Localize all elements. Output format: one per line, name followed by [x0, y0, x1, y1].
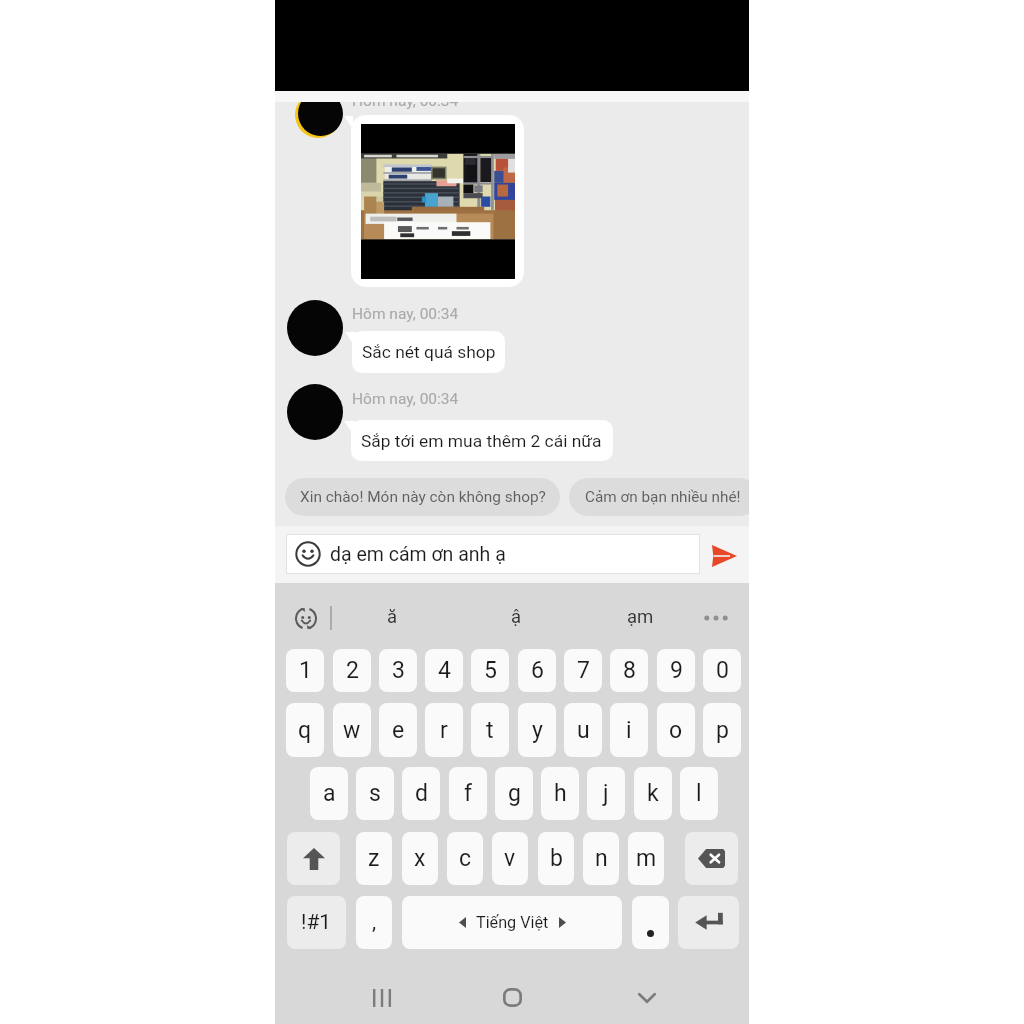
staticText: g	[508, 780, 521, 807]
button[interactable]: k	[634, 767, 672, 820]
button[interactable]: 9	[657, 649, 695, 692]
button[interactable]: Sắc nét quá shop	[352, 331, 505, 373]
button[interactable]: Recent apps	[367, 984, 395, 1012]
staticText: Sắc nét quá shop	[362, 342, 496, 362]
staticText: 4	[438, 657, 451, 684]
button[interactable]: f	[449, 767, 487, 820]
staticText: y	[532, 717, 543, 744]
staticText: v	[504, 845, 516, 872]
staticText: u	[577, 717, 590, 744]
button[interactable]: Backspace	[685, 832, 738, 885]
staticText: ă	[387, 606, 398, 628]
staticText: ,	[372, 910, 377, 935]
staticText: 1	[299, 657, 312, 684]
button[interactable]: d	[402, 767, 440, 820]
button[interactable]: y	[518, 703, 556, 757]
button[interactable]: l	[680, 767, 718, 820]
button[interactable]: Enter	[678, 896, 739, 949]
button[interactable]: u	[564, 703, 602, 757]
button[interactable]: i	[610, 703, 648, 757]
button[interactable]: Photo message	[351, 115, 524, 287]
button[interactable]: 2	[333, 649, 371, 692]
staticText: p	[716, 717, 729, 744]
staticText: Sắp tới em mua thêm 2 cái nữa	[361, 431, 602, 451]
button[interactable]: Cảm ơn bạn nhiều nhé!	[569, 478, 749, 516]
button[interactable]: 7	[564, 649, 602, 692]
staticText: Xin chào! Món này còn không shop?	[300, 488, 546, 506]
button[interactable]: e	[379, 703, 417, 757]
staticText: s	[369, 780, 381, 807]
button[interactable]: p	[703, 703, 741, 757]
staticText: h	[554, 780, 567, 807]
button[interactable]: Profile picture	[287, 300, 343, 356]
staticText: 5	[484, 657, 497, 684]
button[interactable]: x	[402, 832, 438, 885]
staticText: Cảm ơn bạn nhiều nhé!	[585, 488, 741, 506]
button[interactable]: Hide keyboard	[633, 984, 661, 1012]
button[interactable]: q	[286, 703, 324, 757]
button[interactable]: 6	[518, 649, 556, 692]
button[interactable]: 4	[425, 649, 463, 692]
staticText: Hôm nay, 00:34	[352, 305, 459, 323]
button[interactable]: g	[495, 767, 533, 820]
staticText: 9	[670, 657, 683, 684]
staticText: o	[669, 717, 683, 744]
button[interactable]: Profile picture	[298, 91, 343, 136]
button[interactable]: dạ em cám ơn anh ạ	[286, 534, 700, 574]
button[interactable]: b	[538, 832, 574, 885]
button[interactable]: ,	[356, 896, 392, 949]
button[interactable]: z	[356, 832, 392, 885]
button[interactable]: Shift	[287, 832, 340, 885]
staticText: dạ em cám ơn anh ạ	[330, 543, 506, 566]
staticText: 6	[531, 657, 544, 684]
button[interactable]: 1	[286, 649, 324, 692]
button[interactable]: 3	[379, 649, 417, 692]
button[interactable]: a	[310, 767, 348, 820]
staticText: k	[647, 780, 659, 807]
button[interactable]: t	[471, 703, 509, 757]
button[interactable]: Emoji suggestions	[294, 606, 318, 631]
staticText: t	[486, 717, 494, 744]
staticText: z	[368, 845, 380, 872]
staticText: c	[459, 845, 472, 872]
button[interactable]: Profile picture	[287, 384, 343, 440]
button[interactable]: Tiếng Việt	[402, 896, 622, 949]
staticText: l	[696, 780, 702, 807]
button[interactable]: w	[333, 703, 371, 757]
button[interactable]: h	[541, 767, 579, 820]
staticText: b	[550, 845, 563, 872]
button[interactable]: s	[356, 767, 394, 820]
staticText: Tiếng Việt	[476, 913, 549, 932]
button[interactable]: r	[425, 703, 463, 757]
staticText: a	[323, 780, 336, 807]
button[interactable]: Xin chào! Món này còn không shop?	[285, 478, 560, 516]
staticText: m	[636, 845, 657, 872]
button[interactable]: Home	[498, 983, 526, 1011]
button[interactable]: !#1	[287, 896, 346, 949]
button[interactable]: m	[628, 832, 664, 885]
staticText: d	[415, 780, 428, 807]
staticText: 7	[577, 657, 590, 684]
staticText: i	[626, 717, 632, 744]
button[interactable]	[632, 896, 669, 949]
staticText: Hôm nay, 00:34	[352, 390, 459, 408]
staticText: w	[343, 717, 361, 744]
button[interactable]: 0	[703, 649, 741, 692]
staticText: 8	[623, 657, 636, 684]
staticText: r	[440, 717, 448, 744]
staticText: j	[603, 780, 609, 807]
staticText: n	[595, 845, 608, 872]
button[interactable]: c	[447, 832, 483, 885]
button[interactable]: o	[657, 703, 695, 757]
staticText: !#1	[301, 910, 332, 935]
button[interactable]: v	[492, 832, 528, 885]
button[interactable]: More options	[702, 604, 730, 632]
button[interactable]: 5	[471, 649, 509, 692]
button[interactable]: j	[587, 767, 625, 820]
button[interactable]: Send	[703, 535, 745, 577]
staticText: ậ	[511, 606, 522, 628]
button[interactable]: 8	[610, 649, 648, 692]
button[interactable]: n	[583, 832, 619, 885]
staticText: q	[298, 717, 312, 744]
button[interactable]: Sắp tới em mua thêm 2 cái nữa	[351, 420, 613, 461]
